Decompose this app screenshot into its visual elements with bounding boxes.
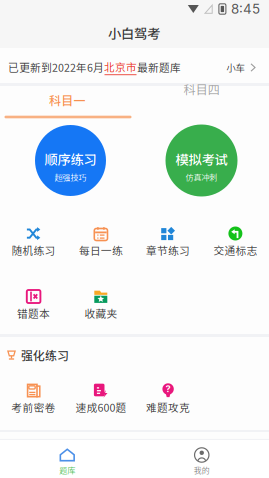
- staticText: 题库: [59, 464, 75, 476]
- staticText: 超强技巧: [54, 171, 86, 183]
- staticText: 顺序练习: [44, 149, 96, 169]
- staticText: 收藏夹: [84, 305, 117, 321]
- button[interactable]: 收藏夹: [0, 0, 269, 478]
- button[interactable]: 每日一练: [0, 0, 269, 478]
- button[interactable]: 模拟考试: [165, 124, 237, 196]
- staticText: 每日一练: [79, 242, 123, 258]
- staticText: 我的: [194, 464, 210, 476]
- staticText: 仿真冲刺: [185, 171, 217, 183]
- staticText: 随机练习: [12, 242, 56, 258]
- staticText: ?: [166, 383, 171, 394]
- staticText: 章节练习: [146, 242, 190, 258]
- staticText: 科目四: [184, 80, 220, 98]
- staticText: 科目一: [49, 91, 85, 109]
- staticText: 速成600题: [75, 399, 126, 415]
- button[interactable]: 随机练习: [0, 0, 269, 478]
- staticText: 小车: [226, 61, 244, 74]
- staticText: 已更新到2022年6月: [8, 59, 104, 75]
- button[interactable]: 章节练习: [0, 0, 269, 478]
- staticText: 错题本: [17, 305, 50, 321]
- staticText: 考前密卷: [12, 399, 56, 415]
- button[interactable]: 科目一: [0, 85, 134, 123]
- staticText: 交通标志: [213, 242, 257, 258]
- staticText: 强化练习: [21, 346, 69, 364]
- staticText: 8:45: [231, 1, 260, 17]
- button[interactable]: 错题本: [0, 0, 269, 478]
- button[interactable]: ?: [0, 0, 269, 478]
- staticText: 模拟考试: [175, 149, 227, 169]
- staticText: 最新题库: [137, 59, 181, 75]
- button[interactable]: 交通标志: [0, 0, 269, 478]
- button[interactable]: 速成600题: [0, 0, 269, 478]
- button[interactable]: 顺序练习: [35, 125, 106, 196]
- button[interactable]: 科目四: [134, 70, 269, 108]
- button[interactable]: 小白驾考: [99, 23, 169, 43]
- button[interactable]: 考前密卷: [0, 0, 269, 478]
- button[interactable]: 我的: [134, 440, 269, 478]
- button[interactable]: 小车: [222, 55, 260, 80]
- button[interactable]: 题库: [0, 440, 134, 478]
- staticText: 难题攻克: [146, 399, 190, 415]
- staticText: 北京市: [104, 59, 137, 74]
- staticText: 小白驾考: [108, 23, 160, 43]
